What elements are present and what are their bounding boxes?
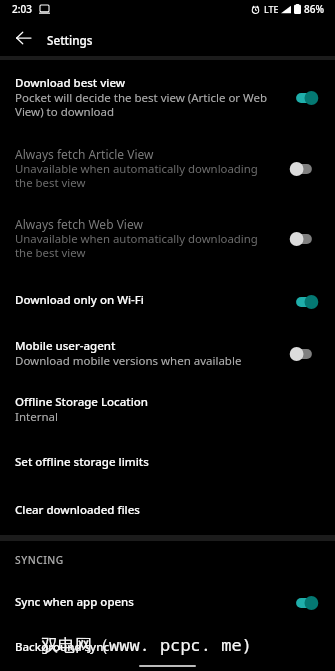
- staticText: 86%: [304, 2, 324, 16]
- button[interactable]: Always fetch Web View: [0, 201, 335, 277]
- button[interactable]: Set offline storage limits: [0, 439, 335, 488]
- staticText: Unavailable when automatically downloadi…: [15, 231, 263, 260]
- button[interactable]: Offline Storage Location: [0, 378, 335, 439]
- staticText: Offline Storage Location: [15, 394, 149, 410]
- staticText: Sync when app opens: [15, 594, 134, 610]
- button[interactable]: Download only on Wi-Fi: [0, 277, 335, 322]
- staticText: Clear downloaded files: [15, 502, 140, 518]
- staticText: Download only on Wi-Fi: [15, 292, 144, 308]
- staticText: Mobile user-agent: [15, 338, 116, 354]
- staticText: Always fetch Article View: [15, 146, 154, 162]
- staticText: Always fetch Web View: [15, 216, 143, 232]
- staticText: Pocket will decide the best view (Articl…: [15, 90, 273, 119]
- button[interactable]: Download best view: [0, 60, 335, 131]
- staticText: LTE: [264, 3, 279, 15]
- button[interactable]: Sync when app opens: [0, 579, 335, 624]
- staticText: Set offline storage limits: [15, 454, 149, 470]
- button[interactable]: Always fetch Article View: [0, 131, 335, 201]
- staticText: 2:03: [12, 2, 32, 16]
- staticText: Background sync: [15, 639, 110, 655]
- staticText: Settings: [47, 32, 93, 48]
- staticText: Internal: [15, 409, 265, 425]
- staticText: Unavailable when automatically downloadi…: [15, 161, 263, 190]
- button[interactable]: Back: [0, 18, 46, 56]
- button[interactable]: Background sync: [0, 624, 335, 664]
- staticText: Download best view: [15, 75, 126, 91]
- staticText: 双电网（www. pcpc. me): [41, 633, 252, 656]
- button[interactable]: Clear downloaded files: [0, 488, 335, 535]
- staticText: Download mobile versions when available: [15, 353, 265, 369]
- button[interactable]: Mobile user-agent: [0, 322, 335, 378]
- staticText: SYNCING: [15, 553, 64, 567]
